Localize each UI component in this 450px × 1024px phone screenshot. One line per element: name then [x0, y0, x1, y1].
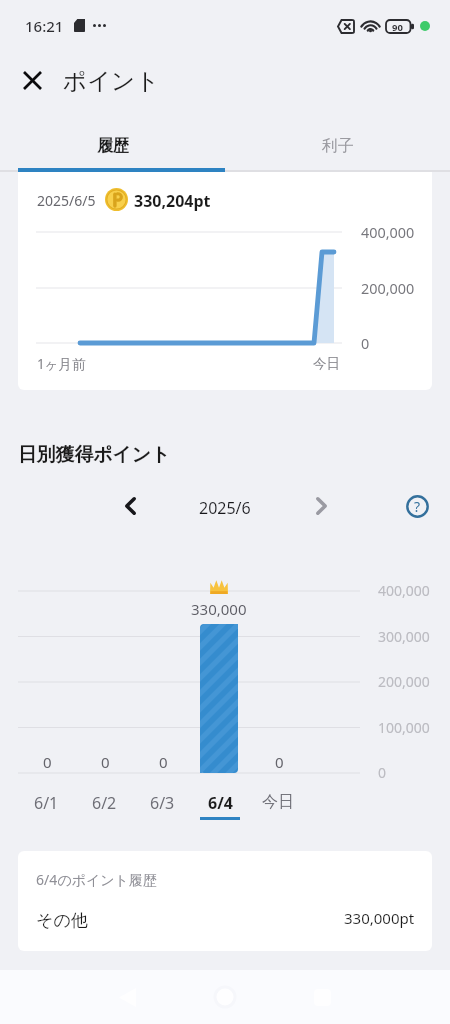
- staticText: 0: [275, 752, 284, 772]
- button[interactable]: 6/4: [191, 792, 249, 824]
- button[interactable]: Next month: [299, 488, 343, 524]
- staticText: 16:21: [25, 16, 64, 36]
- button[interactable]: Help: [396, 488, 439, 524]
- button[interactable]: 履歴: [0, 122, 225, 170]
- staticText: 1ヶ月前: [37, 355, 86, 373]
- staticText: 6/1: [34, 792, 59, 814]
- button[interactable]: 今日: [249, 792, 307, 824]
- staticText: 2025/6: [199, 497, 251, 519]
- staticText: その他: [36, 910, 88, 931]
- staticText: 0: [159, 752, 168, 772]
- staticText: ポイント: [63, 66, 160, 96]
- button[interactable]: 利子: [225, 122, 450, 170]
- staticText: 330,204pt: [134, 190, 211, 212]
- staticText: 200,000: [361, 279, 415, 299]
- button[interactable]: 6/2: [75, 792, 133, 824]
- staticText: 6/4のポイント履歴: [36, 870, 157, 889]
- staticText: 330,000pt: [344, 908, 415, 928]
- button[interactable]: Previous month: [108, 488, 152, 524]
- staticText: 400,000: [378, 581, 430, 600]
- staticText: 6/4: [208, 792, 233, 814]
- staticText: 400,000: [361, 223, 415, 243]
- staticText: 100,000: [378, 718, 430, 737]
- staticText: 90: [392, 21, 403, 34]
- staticText: ?: [414, 497, 421, 516]
- staticText: 6/2: [92, 792, 117, 814]
- staticText: 今日: [262, 792, 294, 812]
- staticText: 300,000: [378, 627, 430, 646]
- staticText: 200,000: [378, 672, 430, 691]
- staticText: 0: [361, 334, 370, 354]
- staticText: 6/3: [150, 792, 175, 814]
- staticText: 利子: [322, 136, 354, 156]
- staticText: 履歴: [97, 136, 129, 156]
- staticText: 0: [43, 752, 52, 772]
- button[interactable]: 6/3: [133, 792, 191, 824]
- staticText: 2025/6/5: [37, 191, 96, 210]
- button[interactable]: Close: [10, 58, 54, 102]
- button[interactable]: 6/1: [17, 792, 75, 824]
- staticText: 0: [101, 752, 110, 772]
- staticText: 330,000: [191, 599, 247, 619]
- staticText: 0: [378, 763, 387, 782]
- button[interactable]: その他: [18, 895, 432, 945]
- staticText: 今日: [313, 355, 340, 372]
- staticText: 日別獲得ポイント: [18, 443, 171, 467]
